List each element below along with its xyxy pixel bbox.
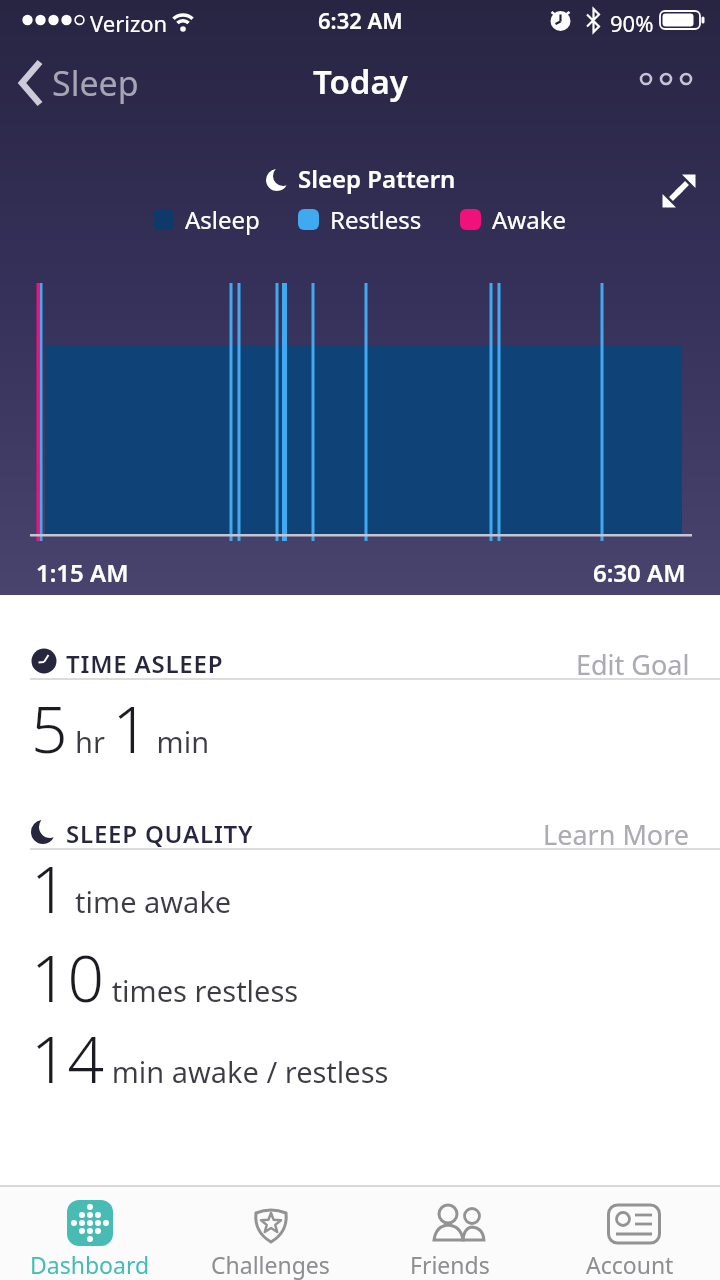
staticText: Verizon [90, 8, 168, 38]
staticText: 1 time awake [31, 845, 232, 932]
staticText: 14 min awake / restless [31, 1015, 389, 1102]
staticText: Learn More [543, 816, 690, 853]
staticText: 1:15 AM [36, 556, 129, 589]
staticText: 10 times restless [31, 934, 299, 1021]
staticText: Dashboard [30, 1249, 150, 1280]
button[interactable]: Challenges [180, 1187, 360, 1280]
staticText: 5 hr 1 min [31, 685, 210, 772]
button[interactable]: Account [540, 1187, 720, 1280]
staticText: Awake [492, 203, 567, 236]
staticText: TIME ASLEEP [66, 647, 224, 680]
staticText: Challenges [211, 1249, 330, 1280]
staticText: Sleep [52, 60, 139, 106]
button[interactable]: Sleep [14, 56, 143, 110]
button[interactable]: Friends [360, 1187, 540, 1280]
staticText: Asleep [185, 203, 260, 236]
button[interactable] [638, 70, 698, 90]
staticText: Today [313, 59, 408, 104]
button[interactable]: Learn More [543, 816, 690, 853]
button[interactable]: Dashboard [0, 1187, 180, 1280]
staticText: Edit Goal [576, 646, 690, 683]
staticText: Sleep Pattern [298, 162, 456, 195]
button[interactable]: Edit Goal [576, 646, 690, 683]
staticText: SLEEP QUALITY [66, 817, 254, 850]
staticText: Account [586, 1249, 674, 1280]
staticText: Restless [330, 203, 422, 236]
staticText: 90% [610, 8, 654, 38]
button[interactable] [660, 172, 698, 210]
staticText: 6:30 AM [593, 556, 686, 589]
staticText: 6:32 AM [318, 5, 403, 35]
staticText: Friends [410, 1249, 490, 1280]
